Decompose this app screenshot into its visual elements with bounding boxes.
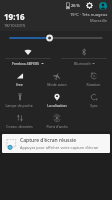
staticText: Freebox-6BFE85 bbox=[12, 61, 40, 66]
staticText: Localisation bbox=[47, 103, 67, 108]
staticText: Sync bbox=[90, 103, 98, 108]
button[interactable]: Rotation automatique bbox=[75, 67, 112, 88]
staticText: 18/10/2015 bbox=[4, 23, 26, 28]
other: Battery bbox=[66, 2, 70, 9]
button[interactable]: Freebox-6BFE85 bbox=[0, 45, 56, 67]
staticText: Conso. données bbox=[6, 124, 33, 129]
button[interactable]: Settings bbox=[85, 1, 94, 10]
staticText: Bluetooth bbox=[74, 61, 91, 66]
staticText: free bbox=[16, 82, 23, 87]
staticText: Lampe de poche bbox=[5, 103, 33, 108]
staticText: Rotation automatique bbox=[76, 82, 111, 87]
staticText: Point d'accès bbox=[46, 124, 68, 129]
button[interactable]: Brightness bbox=[0, 31, 112, 45]
button[interactable]: free bbox=[0, 67, 38, 88]
staticText: Appuyez pour afficher votre capture d'éc… bbox=[20, 145, 99, 150]
staticText: Capture d'écran réussie bbox=[20, 137, 77, 144]
staticText: Marseille bbox=[90, 18, 108, 23]
button[interactable]: 15°C · Très nuageux bbox=[70, 12, 108, 23]
staticText: Mode avion bbox=[47, 82, 67, 87]
staticText: 15°C · Très nuageux bbox=[70, 12, 108, 17]
button[interactable]: 19:16 bbox=[4, 11, 26, 28]
button[interactable]: Mode avion bbox=[38, 67, 75, 88]
button[interactable]: User profile bbox=[98, 1, 107, 10]
button[interactable]: Bluetooth bbox=[56, 45, 112, 67]
staticText: 19:16 bbox=[4, 11, 25, 22]
button[interactable]: Capture d'écran réussie bbox=[2, 134, 110, 153]
button[interactable]: Conso. données bbox=[0, 109, 38, 130]
button[interactable]: Localisation bbox=[38, 88, 75, 109]
button[interactable]: Point d'accès bbox=[38, 109, 75, 130]
staticText: 26 % bbox=[71, 3, 80, 8]
button[interactable]: Lampe de poche bbox=[0, 88, 38, 109]
button[interactable]: Sync bbox=[75, 88, 112, 109]
